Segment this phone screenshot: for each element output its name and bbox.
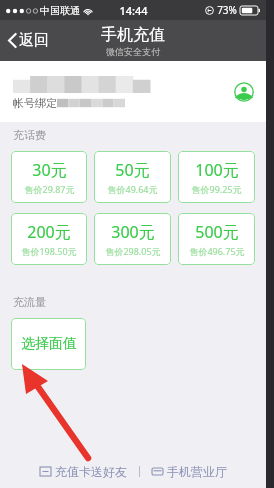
staticText: 充话费 [13, 128, 46, 142]
staticText: 14:44 [119, 3, 148, 18]
staticText: 微信安全支付 [106, 46, 160, 57]
staticText: 选择面值 [21, 335, 77, 353]
staticText: 售价29.87元 [24, 183, 75, 195]
staticText: 手机营业厅 [167, 464, 227, 479]
staticText: 50元 [115, 159, 150, 181]
staticText: 帐号绑定 [13, 96, 57, 110]
button[interactable]: 50元 [94, 151, 171, 203]
staticText: 充值卡送好友 [55, 464, 127, 479]
staticText: 30元 [32, 159, 67, 181]
button[interactable]: Account [234, 82, 254, 102]
button[interactable]: 30元 [11, 151, 87, 203]
staticText: 200元 [27, 221, 71, 243]
staticText: 售价496.75元 [189, 245, 245, 257]
button[interactable]: 帐号绑定 [0, 61, 266, 122]
staticText: 售价49.64元 [107, 183, 158, 195]
button[interactable]: 手机营业厅 [148, 460, 231, 483]
staticText: 500元 [195, 221, 239, 243]
button[interactable]: 充值卡送好友 [36, 460, 131, 483]
staticText: 手机充值 [101, 25, 165, 45]
button[interactable]: 300元 [94, 213, 171, 265]
button[interactable]: 500元 [178, 213, 255, 265]
staticText: 充流量 [13, 295, 46, 309]
staticText: 73% [217, 3, 237, 17]
button[interactable]: 100元 [178, 151, 255, 203]
button[interactable]: 返回 [0, 20, 59, 61]
staticText: 100元 [195, 159, 239, 181]
staticText: 售价298.05元 [105, 245, 161, 257]
button[interactable]: 200元 [11, 213, 87, 265]
staticText: 售价198.50元 [21, 245, 77, 257]
button[interactable]: 选择面值 [11, 318, 86, 370]
staticText: 中国联通 [40, 4, 80, 17]
staticText: 返回 [19, 31, 49, 50]
staticText: 售价99.25元 [191, 183, 242, 195]
staticText: 300元 [111, 221, 155, 243]
